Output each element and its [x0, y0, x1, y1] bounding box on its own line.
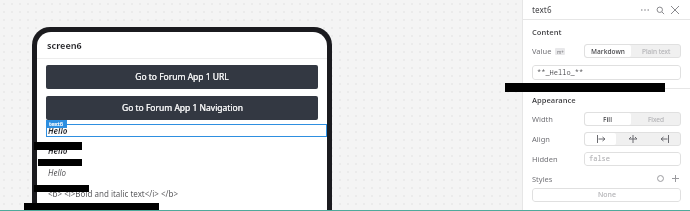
button[interactable]: Reset styles	[655, 173, 666, 184]
staticText: Go to Forum App 1 Navigation	[122, 102, 243, 114]
button[interactable]: Close	[669, 4, 681, 16]
staticText: Fixed	[648, 115, 665, 124]
button[interactable]: More options	[639, 4, 651, 16]
staticText: Hidden	[532, 154, 558, 164]
staticText: Hello	[48, 145, 68, 156]
button[interactable]: Go to Forum App 1 Navigation	[46, 96, 318, 120]
button[interactable]: false	[584, 152, 681, 166]
button[interactable]: **_Hello_**	[532, 65, 681, 80]
staticText: **_Hello_**	[537, 68, 584, 78]
staticText: Go to Forum App 1 URL	[135, 71, 229, 83]
staticText: Value	[532, 46, 552, 56]
staticText: Styles	[532, 174, 553, 184]
staticText: Content	[532, 27, 562, 37]
staticText: m+	[557, 49, 564, 55]
button[interactable]: None	[532, 188, 681, 202]
staticText: Appearance	[532, 95, 576, 105]
staticText: Plain text	[642, 47, 671, 56]
button[interactable]: Align left	[585, 133, 616, 145]
staticText: Hello	[48, 125, 68, 136]
staticText: <b> <i>Bold and italic text</i> </b>	[48, 188, 179, 199]
button[interactable]: Fixed	[633, 113, 680, 125]
staticText: false	[589, 154, 610, 164]
button[interactable]: Fill	[585, 113, 631, 125]
staticText: text6	[49, 120, 64, 128]
button[interactable]: Plain text	[633, 45, 680, 57]
staticText: Width	[532, 114, 553, 124]
button[interactable]: Go to Forum App 1 URL	[46, 65, 318, 89]
button[interactable]: Align right	[650, 133, 680, 145]
staticText: text6	[532, 4, 552, 15]
button[interactable]: Markdown	[585, 45, 631, 57]
staticText: Align	[532, 134, 550, 144]
staticText: Fill	[603, 115, 613, 124]
staticText: None	[598, 190, 616, 200]
button[interactable]: Add style	[670, 173, 681, 184]
button[interactable]: Search	[654, 4, 666, 16]
staticText: screen6	[47, 39, 82, 51]
staticText: Hello	[48, 167, 67, 178]
button[interactable]: Align center	[618, 133, 648, 145]
button[interactable]: Hello	[46, 124, 327, 137]
staticText: Markdown	[591, 47, 625, 56]
